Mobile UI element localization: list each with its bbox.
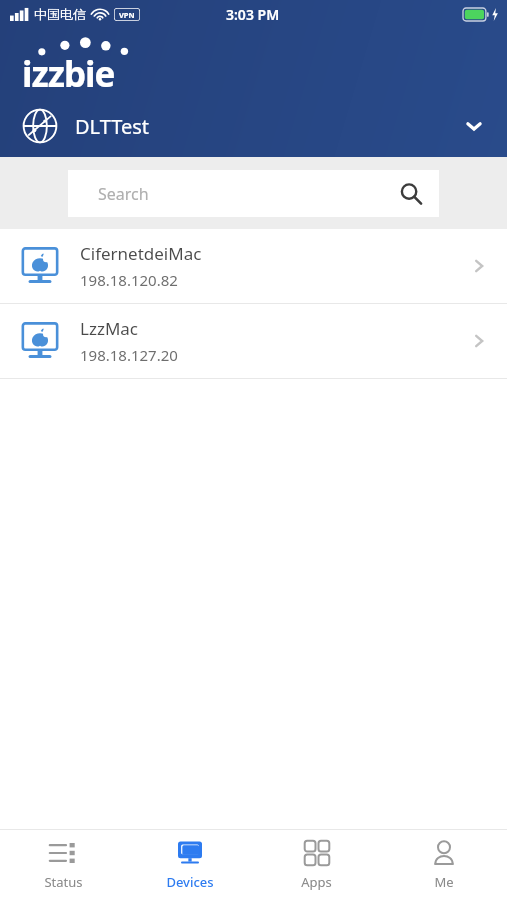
- staticText: 中国电信: [34, 6, 86, 22]
- button[interactable]: Apps: [253, 830, 380, 900]
- button[interactable]: Me: [380, 830, 507, 900]
- staticText: DLTTest: [75, 113, 149, 140]
- button[interactable]: DLTTest: [0, 95, 507, 157]
- staticText: Me: [434, 873, 454, 891]
- button[interactable]: LzzMac: [0, 304, 507, 378]
- staticText: 198.18.120.82: [80, 270, 178, 290]
- staticText: Apps: [301, 873, 332, 891]
- staticText: Status: [44, 873, 83, 891]
- staticText: 3:03 PM: [226, 5, 280, 24]
- button[interactable]: CifernetdeiMac: [0, 229, 507, 303]
- staticText: izzbie: [22, 50, 115, 98]
- staticText: VPN: [119, 10, 135, 20]
- staticText: 198.18.127.20: [80, 345, 178, 365]
- staticText: CifernetdeiMac: [80, 242, 202, 265]
- staticText: Search: [98, 183, 149, 205]
- button[interactable]: Devices: [126, 830, 253, 900]
- other: Search: [399, 182, 423, 206]
- button[interactable]: Status: [0, 830, 126, 900]
- other: Expand network list: [463, 115, 485, 137]
- staticText: LzzMac: [80, 317, 139, 340]
- staticText: Devices: [166, 873, 214, 891]
- button[interactable]: Search: [68, 170, 439, 217]
